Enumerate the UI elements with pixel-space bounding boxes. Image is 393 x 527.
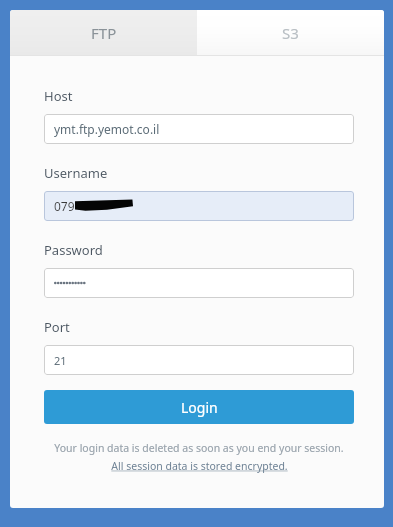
staticText: All session data is stored encrypted. [111, 459, 288, 473]
staticText: Login [181, 398, 218, 417]
staticText: Host [44, 87, 73, 105]
staticText: Port [44, 318, 70, 336]
staticText: ymt.ftp.yemot.co.il [54, 121, 160, 137]
button[interactable]: ymt.ftp.yemot.co.il [44, 114, 354, 144]
staticText: Your login data is deleted as soon as yo… [54, 441, 344, 455]
staticText: 079 [54, 198, 75, 214]
button[interactable] [44, 268, 354, 298]
staticText: 21 [54, 353, 67, 368]
staticText: Username [44, 164, 108, 182]
button[interactable]: Login [44, 390, 354, 424]
button[interactable]: 079 [44, 191, 354, 221]
button[interactable]: 21 [44, 345, 354, 375]
button[interactable]: S3 [197, 10, 384, 55]
button[interactable]: FTP [10, 10, 197, 55]
staticText: FTP [91, 23, 117, 43]
button[interactable]: All session data is stored encrypted. [111, 459, 288, 473]
staticText: S3 [282, 23, 299, 43]
staticText: Password [44, 241, 103, 259]
